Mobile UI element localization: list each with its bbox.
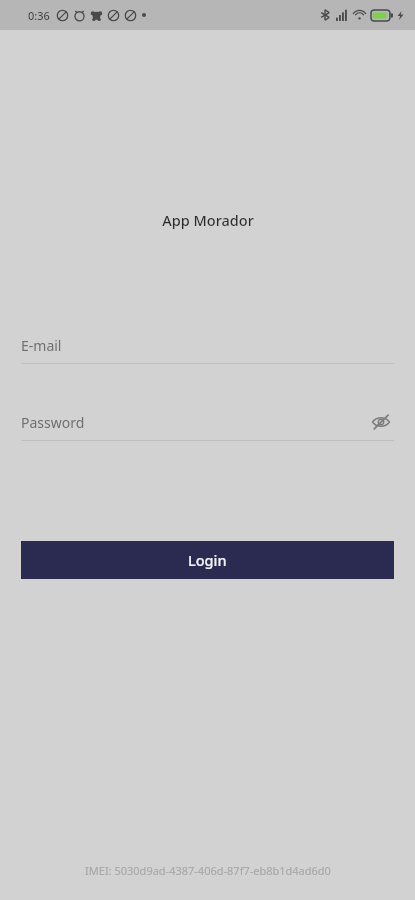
staticText: E-mail — [21, 336, 62, 355]
button[interactable]: Show password — [368, 409, 394, 435]
staticText: App Morador — [162, 210, 254, 230]
button[interactable]: Login — [21, 541, 394, 579]
staticText: 0:36 — [28, 8, 50, 23]
staticText: IMEI: 5030d9ad-4387-406d-87f7-eb8b1d4ad6… — [85, 863, 331, 878]
staticText: Login — [188, 550, 227, 570]
staticText: Password — [21, 413, 85, 432]
